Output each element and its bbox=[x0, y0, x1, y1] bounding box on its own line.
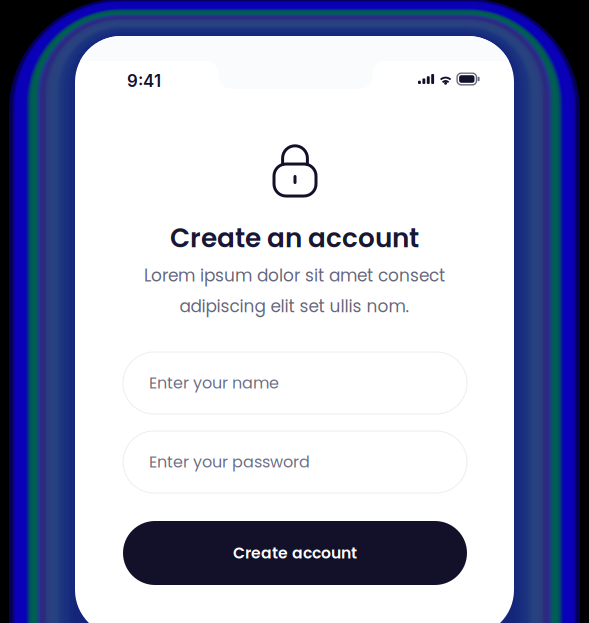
button[interactable]: Enter your name bbox=[123, 352, 467, 414]
staticText: Enter your password bbox=[149, 451, 310, 473]
staticText: Create account bbox=[233, 542, 357, 564]
staticText: Enter your name bbox=[149, 372, 279, 394]
staticText: Lorem ipsum dolor sit amet consect bbox=[144, 264, 445, 287]
button[interactable]: Create account bbox=[123, 521, 467, 585]
button[interactable]: Enter your password bbox=[123, 431, 467, 493]
staticText: 9:41 bbox=[127, 71, 161, 91]
staticText: Create an account bbox=[170, 220, 419, 256]
staticText: adipiscing elit set ullis nom. bbox=[179, 294, 409, 318]
